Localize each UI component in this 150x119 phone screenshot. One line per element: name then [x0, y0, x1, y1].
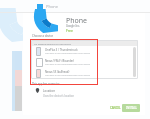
staticText: Uses the device's location [43, 94, 75, 98]
button[interactable]: Phone [37, 3, 59, 10]
staticText: Free [66, 28, 73, 33]
staticText: Phone [46, 4, 59, 9]
button[interactable]: Nexus 9 Wi-Fi (flounder) [31, 57, 138, 68]
staticText: CANCEL [110, 106, 121, 110]
staticText: This item is not compatible with your de… [45, 74, 90, 77]
staticText: Google Inc. [66, 24, 80, 28]
button[interactable]: INSTALL [122, 104, 140, 112]
button[interactable]: Nexus 5X (bullhead) [31, 68, 138, 79]
staticText: Nexus 9 Wi-Fi (flounder) [45, 59, 75, 63]
staticText: Choose a device [32, 34, 54, 38]
staticText: This item is not compatible with your de… [45, 63, 90, 66]
staticText: No eligible devices for app install [34, 42, 71, 45]
staticText: Location [43, 89, 56, 93]
staticText: INSTALL [126, 106, 137, 110]
staticText: This item is not compatible with your de… [45, 52, 90, 55]
button[interactable]: Location [35, 88, 56, 93]
other: Location [35, 88, 40, 93]
staticText: This app has access to: [32, 82, 60, 86]
staticText: OnePlus 3 / Thunderstruck [45, 48, 78, 52]
button[interactable]: OnePlus 3 / Thunderstruck [31, 46, 138, 57]
button[interactable]: CANCEL [108, 104, 123, 112]
staticText: Nexus 5X (bullhead) [45, 70, 70, 74]
staticText: Phone [66, 16, 88, 26]
